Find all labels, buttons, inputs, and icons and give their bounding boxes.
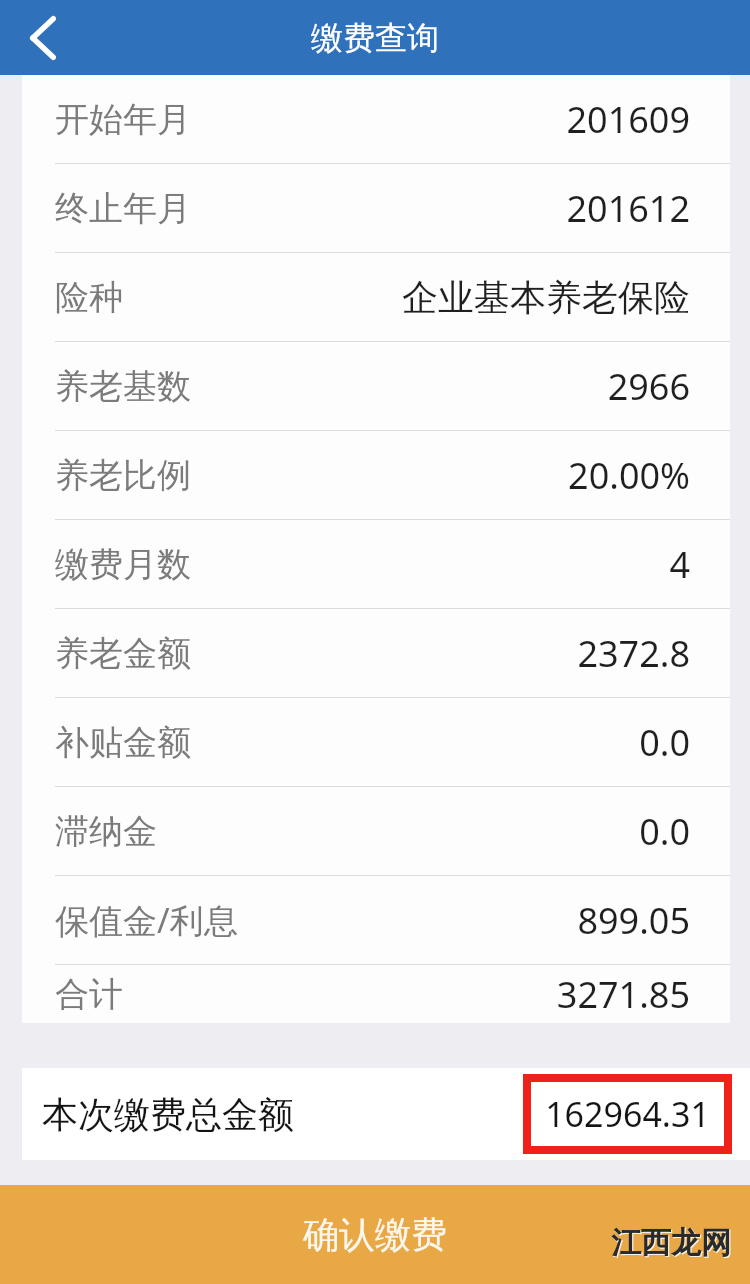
button[interactable]: 养老金额 — [22, 609, 730, 697]
staticText: 养老金额 — [55, 632, 191, 675]
staticText: 养老基数 — [55, 365, 191, 408]
button[interactable]: 开始年月 — [22, 75, 730, 163]
button[interactable]: 确认缴费 — [0, 1185, 750, 1284]
button[interactable]: 险种 — [22, 253, 730, 341]
staticText: 滞纳金 — [55, 810, 157, 853]
staticText: 201612 — [566, 184, 690, 233]
staticText: 4 — [669, 540, 690, 589]
staticText: 899.05 — [577, 896, 690, 945]
staticText: 缴费查询 — [311, 18, 439, 58]
staticText: 20.00% — [568, 451, 690, 500]
staticText: 本次缴费总金额 — [42, 1092, 294, 1137]
staticText: 缴费月数 — [55, 543, 191, 586]
staticText: 162964.31 — [545, 1091, 710, 1137]
button[interactable]: 合计 — [22, 965, 730, 1023]
staticText: 保值金/利息 — [55, 897, 238, 943]
staticText: 险种 — [55, 276, 123, 319]
staticText: 合计 — [55, 973, 123, 1016]
button[interactable]: 养老基数 — [22, 342, 730, 430]
staticText: 开始年月 — [55, 98, 191, 141]
staticText: 0.0 — [639, 807, 690, 856]
button[interactable]: 补贴金额 — [22, 698, 730, 786]
button[interactable]: 保值金/利息 — [22, 876, 730, 964]
staticText: 2372.8 — [577, 629, 690, 678]
button[interactable]: 滞纳金 — [22, 787, 730, 875]
staticText: 3271.85 — [556, 970, 690, 1019]
button[interactable]: 缴费月数 — [22, 520, 730, 608]
staticText: 201609 — [566, 95, 690, 144]
staticText: 0.0 — [639, 718, 690, 767]
button[interactable]: Back — [0, 0, 86, 75]
button[interactable]: 养老比例 — [22, 431, 730, 519]
staticText: 企业基本养老保险 — [402, 275, 690, 320]
staticText: 终止年月 — [55, 187, 191, 230]
button[interactable]: 终止年月 — [22, 164, 730, 252]
staticText: 江西龙网 — [611, 1224, 731, 1262]
staticText: 养老比例 — [55, 454, 191, 497]
staticText: 确认缴费 — [303, 1212, 447, 1257]
staticText: 补贴金额 — [55, 721, 191, 764]
staticText: 2966 — [607, 362, 690, 411]
staticText: 江西龙网 — [612, 1225, 732, 1263]
